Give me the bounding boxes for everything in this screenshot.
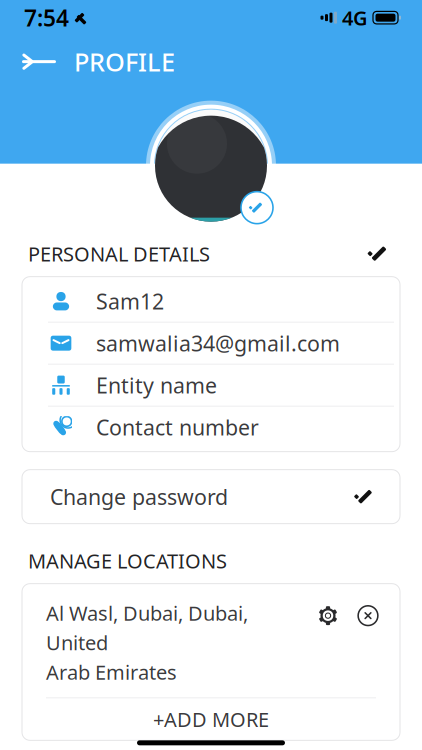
staticText: Al Wasl, Dubai, Dubai, United Arab Emira…	[46, 600, 248, 685]
staticText: Sam12	[96, 287, 164, 315]
staticText: Contact number	[96, 413, 259, 441]
button[interactable]: PROFILE	[22, 39, 175, 84]
button[interactable]: Remove location	[354, 602, 382, 630]
button[interactable]: Sam12	[22, 281, 400, 323]
staticText: samwalia34@gmail.com	[96, 329, 340, 357]
staticText: +ADD MORE	[153, 706, 269, 733]
staticText: Entity name	[96, 371, 217, 399]
button[interactable]: Edit personal details	[364, 239, 394, 269]
button[interactable]: Location settings	[314, 602, 342, 630]
staticText: MANAGE LOCATIONS	[28, 547, 227, 574]
staticText: PERSONAL DETAILS	[28, 240, 210, 267]
button[interactable]: samwalia34@gmail.com	[22, 323, 400, 365]
button[interactable]: Entity name	[22, 365, 400, 407]
button[interactable]: Change password	[22, 470, 400, 524]
button[interactable]: Edit profile photo	[240, 191, 274, 225]
button[interactable]: +ADD MORE	[22, 698, 400, 740]
staticText: Change password	[50, 482, 228, 511]
staticText: 7:54	[24, 3, 69, 33]
staticText: PROFILE	[74, 45, 175, 78]
staticText: 4G	[342, 4, 368, 31]
button[interactable]: Contact number	[22, 407, 400, 448]
